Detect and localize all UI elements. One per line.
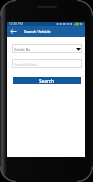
button[interactable]: Vehicle No xyxy=(12,44,82,53)
staticText: Search Vehicle xyxy=(24,29,51,34)
button[interactable]: Search Vehicle... xyxy=(12,59,82,68)
button[interactable]: Search xyxy=(13,77,81,84)
staticText: Search Vehicle... xyxy=(14,62,39,66)
staticText: Vehicle No xyxy=(14,47,31,51)
staticText: Search xyxy=(39,78,55,84)
staticText: 12:30 PM xyxy=(9,22,23,26)
button[interactable]: Back xyxy=(7,26,19,37)
